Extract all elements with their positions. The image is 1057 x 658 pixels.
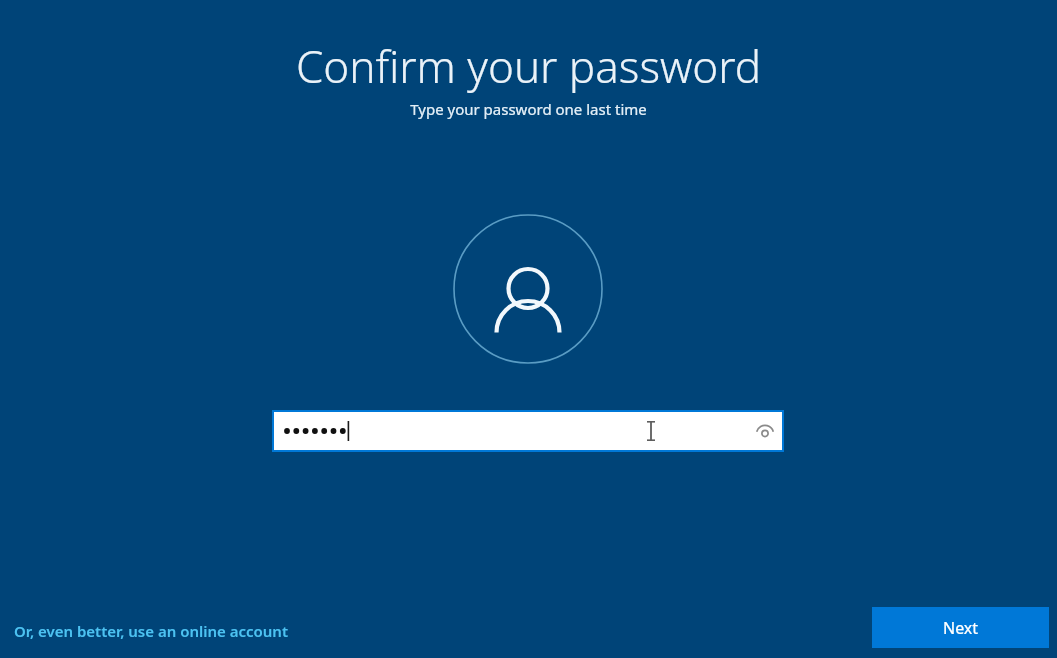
button[interactable]: Next (872, 607, 1049, 648)
staticText: Confirm your password (0, 36, 1057, 96)
button[interactable]: Show password (748, 412, 782, 450)
button[interactable]: Show password (274, 412, 782, 450)
button[interactable]: Or, even better, use an online account (8, 617, 295, 645)
staticText: Or, even better, use an online account (14, 621, 289, 641)
staticText: Next (943, 617, 979, 639)
staticText: Type your password one last time (0, 99, 1057, 119)
